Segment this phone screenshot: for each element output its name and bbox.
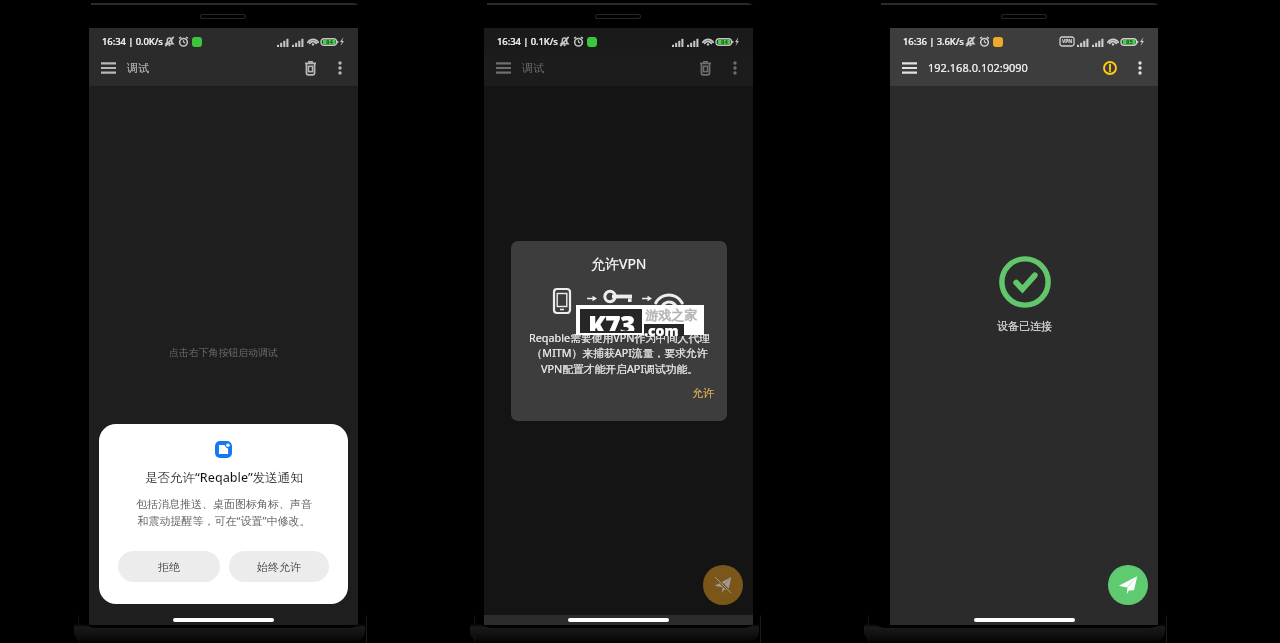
staticText: 85: [1126, 38, 1133, 46]
staticText: 包括消息推送、桌面图标角标、声音 和震动提醒等，可在“设置”中修改。: [136, 497, 312, 528]
button[interactable]: More options: [1128, 56, 1152, 80]
staticText: .com: [644, 321, 679, 340]
staticText: 始终允许: [257, 560, 301, 574]
staticText: K73: [588, 307, 635, 331]
button[interactable]: Warning: [1098, 56, 1122, 80]
staticText: 允许VPN: [591, 254, 647, 273]
staticText: 16:34 | 0.0K/s: [102, 35, 163, 48]
button[interactable]: Stop capture: [703, 565, 743, 605]
staticText: 游戏之家: [645, 307, 697, 323]
button[interactable]: More options: [723, 56, 747, 80]
staticText: 点击右下角按钮启动调试: [169, 346, 278, 358]
button[interactable]: 拒绝: [118, 551, 220, 582]
staticText: 调试: [127, 61, 149, 75]
button[interactable]: Menu: [97, 57, 119, 79]
staticText: 允许: [692, 386, 714, 400]
staticText: 16:36 | 3.6K/s: [903, 35, 964, 48]
button[interactable]: 允许: [692, 386, 714, 400]
button[interactable]: Delete: [298, 56, 322, 80]
button[interactable]: 始终允许: [229, 551, 329, 582]
button[interactable]: Start capture: [1108, 565, 1148, 605]
button[interactable]: More options: [328, 56, 352, 80]
button[interactable]: Menu: [898, 57, 920, 79]
staticText: 拒绝: [158, 560, 180, 574]
button[interactable]: Menu: [492, 57, 514, 79]
staticText: 16:34 | 0.1K/s: [497, 35, 558, 48]
staticText: 调试: [522, 61, 544, 75]
button[interactable]: Delete: [693, 56, 717, 80]
staticText: 192.168.0.102:9090: [928, 60, 1028, 75]
staticText: 84: [721, 38, 728, 46]
staticText: 84: [326, 38, 333, 46]
staticText: 是否允许“Reqable”发送通知: [145, 469, 303, 486]
staticText: VPN: [1062, 38, 1073, 45]
staticText: 设备已连接: [997, 319, 1052, 333]
staticText: Reqable需要使用VPN作为中间人代理 （MITM）来捕获API流量，要求允…: [529, 330, 710, 376]
